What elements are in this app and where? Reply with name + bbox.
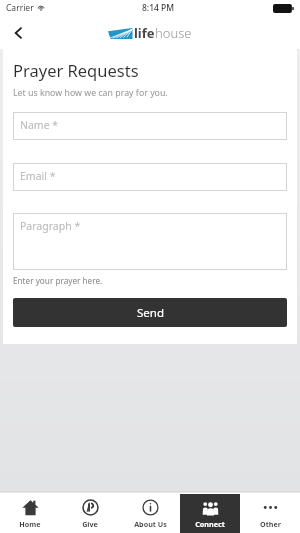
staticText: Name *: [20, 118, 59, 132]
staticText: Give: [82, 519, 98, 529]
button[interactable]: Paragraph *: [13, 213, 287, 270]
staticText: Enter your prayer here.: [13, 275, 103, 286]
staticText: Let us know how we can pray for you.: [13, 87, 168, 99]
button[interactable]: Name *: [13, 112, 287, 140]
button[interactable]: About Us: [120, 494, 180, 533]
staticText: About Us: [134, 519, 167, 529]
staticText: life: [134, 24, 155, 42]
button[interactable]: Email *: [13, 163, 287, 191]
button[interactable]: Send: [13, 298, 287, 327]
staticText: Email *: [20, 169, 56, 183]
staticText: Send: [137, 305, 164, 321]
staticText: Carrier: [6, 2, 34, 14]
staticText: Prayer Requests: [13, 59, 139, 81]
staticText: Paragraph *: [20, 219, 81, 233]
button[interactable]: Other: [240, 494, 300, 533]
staticText: Connect: [195, 519, 225, 529]
staticText: Other: [260, 519, 281, 529]
button[interactable]: Back: [4, 18, 34, 48]
button[interactable]: Give: [60, 494, 120, 533]
staticText: house: [155, 24, 192, 42]
button[interactable]: Connect: [180, 494, 240, 533]
staticText: Home: [19, 519, 41, 529]
button[interactable]: Home: [0, 494, 60, 533]
staticText: 8:14 PM: [142, 2, 175, 14]
